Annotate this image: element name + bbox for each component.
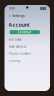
staticText: Country: [9, 59, 20, 62]
button[interactable]: ‹: [8, 12, 25, 19]
button[interactable]: Full name: [9, 38, 45, 41]
button[interactable]: Country: [9, 59, 45, 62]
button[interactable]: Continue: [9, 30, 40, 34]
staticText: Full name: [9, 38, 22, 41]
staticText: Settings: [12, 13, 25, 18]
button[interactable]: Email address: [9, 45, 45, 48]
staticText: ‹: [8, 12, 10, 19]
button[interactable]: Phone number: [9, 52, 45, 55]
staticText: Phone number: [9, 52, 31, 55]
staticText: ▮▮▮: [40, 6, 46, 10]
staticText: Continue: [18, 30, 32, 34]
staticText: Account: [8, 21, 29, 28]
staticText: Email address: [9, 45, 26, 48]
staticText: 9:41: [8, 5, 15, 11]
